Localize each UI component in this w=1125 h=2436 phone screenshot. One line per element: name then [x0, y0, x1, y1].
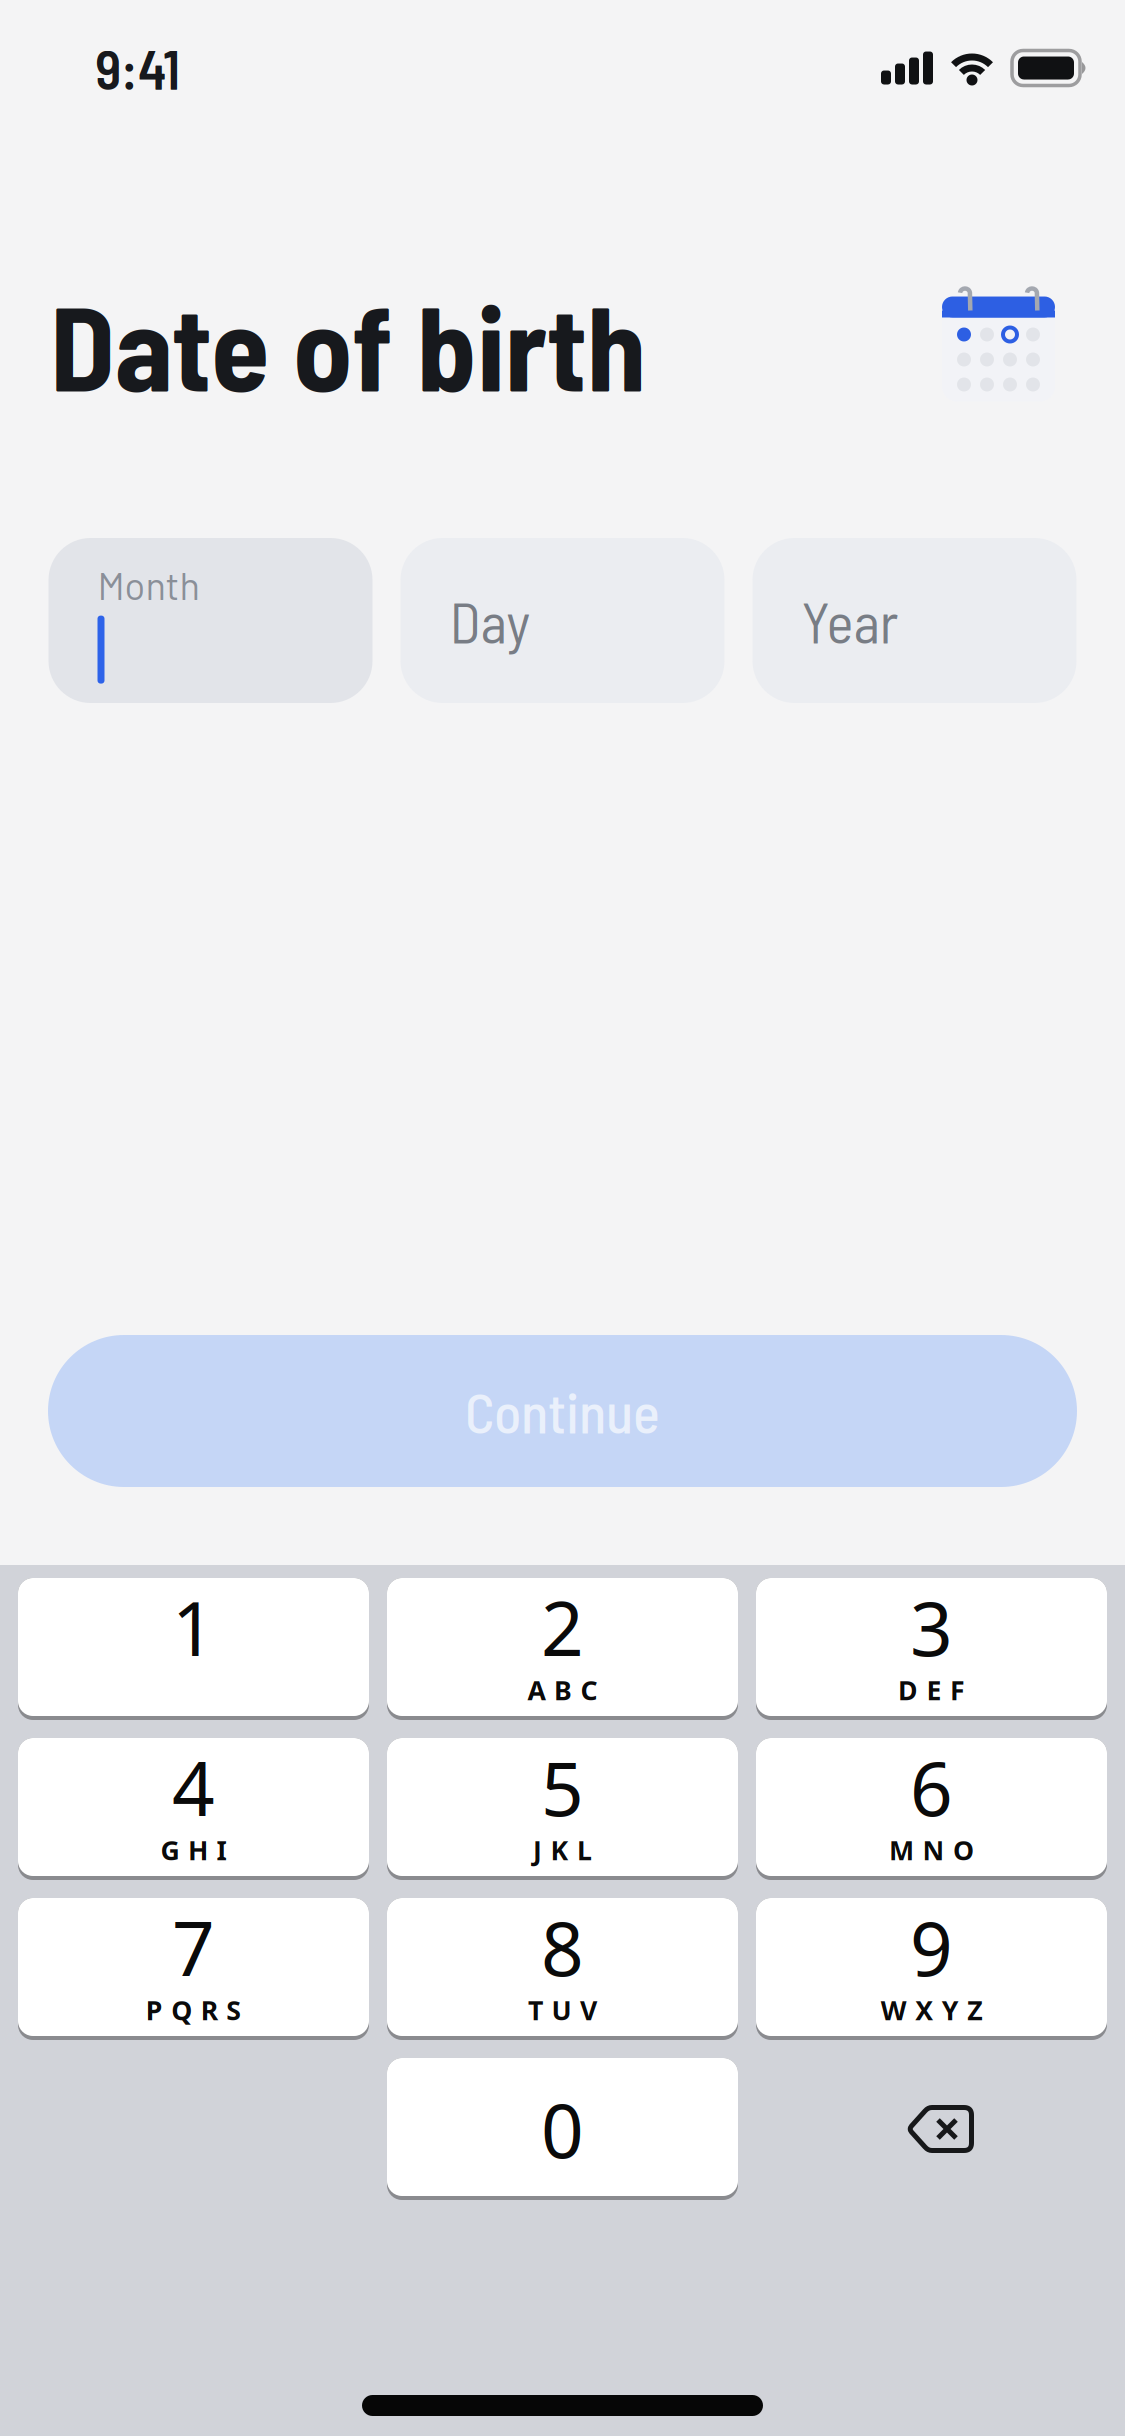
staticText: 9:41 — [95, 35, 180, 101]
staticText: 4 — [172, 1737, 215, 1837]
button[interactable]: 3 — [756, 1578, 1107, 1720]
button[interactable]: Month — [48, 538, 372, 703]
staticText: TUV — [528, 1992, 597, 2028]
staticText: DEF — [898, 1672, 965, 1708]
button[interactable] — [756, 2058, 1107, 2200]
staticText: Month — [97, 562, 199, 608]
staticText: 2 — [541, 1577, 584, 1677]
staticText: 1 — [172, 1577, 215, 1677]
button[interactable]: Continue — [48, 1335, 1077, 1487]
button[interactable]: 4 — [18, 1738, 369, 1880]
staticText: MNO — [889, 1832, 974, 1868]
staticText: GHI — [160, 1832, 226, 1868]
staticText: 8 — [541, 1897, 584, 1997]
button[interactable]: 2 — [387, 1578, 738, 1720]
staticText: 0 — [541, 2079, 584, 2179]
button[interactable]: 0 — [387, 2058, 738, 2200]
button[interactable]: 1 — [18, 1578, 369, 1720]
staticText: 7 — [172, 1897, 215, 1997]
staticText: 5 — [541, 1737, 584, 1837]
staticText: PQRS — [146, 1992, 241, 2028]
staticText: Continue — [465, 1377, 660, 1445]
staticText: Date of birth — [50, 273, 646, 415]
button[interactable]: 5 — [387, 1738, 738, 1880]
staticText: WXYZ — [881, 1992, 982, 2028]
staticText: 9 — [910, 1897, 953, 1997]
button[interactable]: 8 — [387, 1898, 738, 2040]
staticText: 3 — [910, 1577, 953, 1677]
staticText: Day — [449, 586, 530, 655]
button[interactable]: 6 — [756, 1738, 1107, 1880]
button[interactable]: 9 — [756, 1898, 1107, 2040]
button[interactable]: Year — [752, 538, 1076, 703]
staticText: JKL — [533, 1832, 592, 1868]
staticText: Year — [801, 586, 898, 655]
staticText: 6 — [910, 1737, 953, 1837]
button[interactable]: 7 — [18, 1898, 369, 2040]
staticText: ABC — [527, 1672, 597, 1708]
button[interactable]: Day — [400, 538, 724, 703]
